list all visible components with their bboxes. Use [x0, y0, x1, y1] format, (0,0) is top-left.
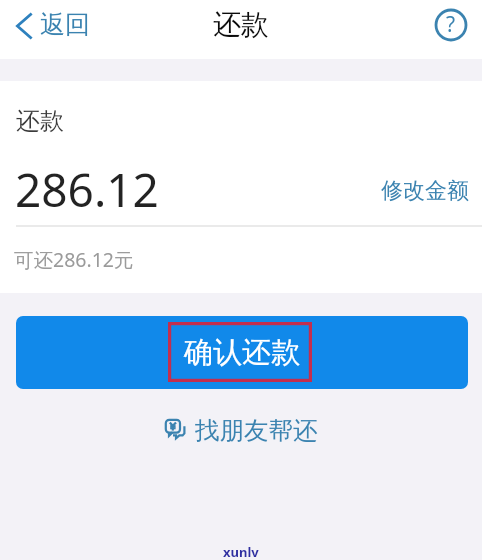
- staticText: xunlv: [223, 543, 259, 560]
- staticText: 还款: [16, 106, 64, 136]
- staticText: 286.12: [15, 158, 159, 221]
- button[interactable]: 确认还款: [16, 316, 468, 389]
- button[interactable]: 返回: [0, 8, 102, 45]
- staticText: 可还286.12元: [14, 246, 134, 273]
- staticText: 确认还款: [184, 334, 300, 371]
- button[interactable]: 找朋友帮还: [157, 410, 325, 452]
- staticText: 返回: [40, 9, 90, 40]
- staticText: ?: [446, 10, 456, 39]
- button[interactable]: 修改金额: [381, 177, 482, 205]
- staticText: 找朋友帮还: [195, 415, 318, 446]
- staticText: 还款: [213, 7, 269, 42]
- button[interactable]: Help: [433, 7, 469, 43]
- staticText: 修改金额: [381, 177, 469, 205]
